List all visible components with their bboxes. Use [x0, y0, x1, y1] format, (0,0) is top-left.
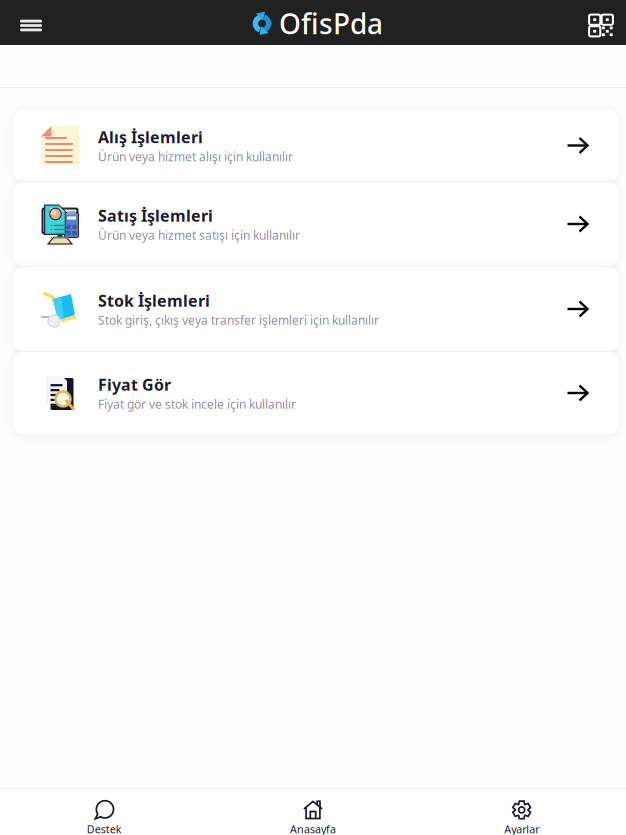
button[interactable]: Stok İşlemleri [14, 267, 618, 351]
staticText: Stok giriş, çıkış veya transfer işlemler… [98, 312, 379, 328]
staticText: Destek [87, 822, 122, 835]
button[interactable]: Scan QR code [580, 0, 622, 45]
button[interactable]: Satış İşlemleri [14, 182, 618, 266]
staticText: Ürün veya hizmet alışı için kullanılır [98, 149, 293, 165]
button[interactable]: Ayarlar [417, 789, 626, 835]
button[interactable]: Alış İşlemleri [14, 110, 618, 181]
staticText: Satış İşlemleri [98, 205, 213, 226]
staticText: Stok İşlemleri [98, 290, 210, 311]
button[interactable]: Destek [0, 789, 209, 835]
button[interactable]: Menu [10, 0, 52, 45]
button[interactable]: Fiyat Gör [14, 352, 618, 434]
staticText: Anasayfa [290, 822, 336, 835]
staticText: Fiyat gör ve stok incele için kullanılır [98, 396, 296, 412]
staticText: Fiyat Gör [98, 374, 171, 395]
staticText: Ayarlar [504, 822, 539, 835]
staticText: Ürün veya hizmet satışı için kullanılır [98, 227, 300, 243]
staticText: OfisPda [279, 5, 383, 42]
staticText: Alış İşlemleri [98, 126, 203, 148]
button[interactable]: Anasayfa [209, 789, 417, 835]
